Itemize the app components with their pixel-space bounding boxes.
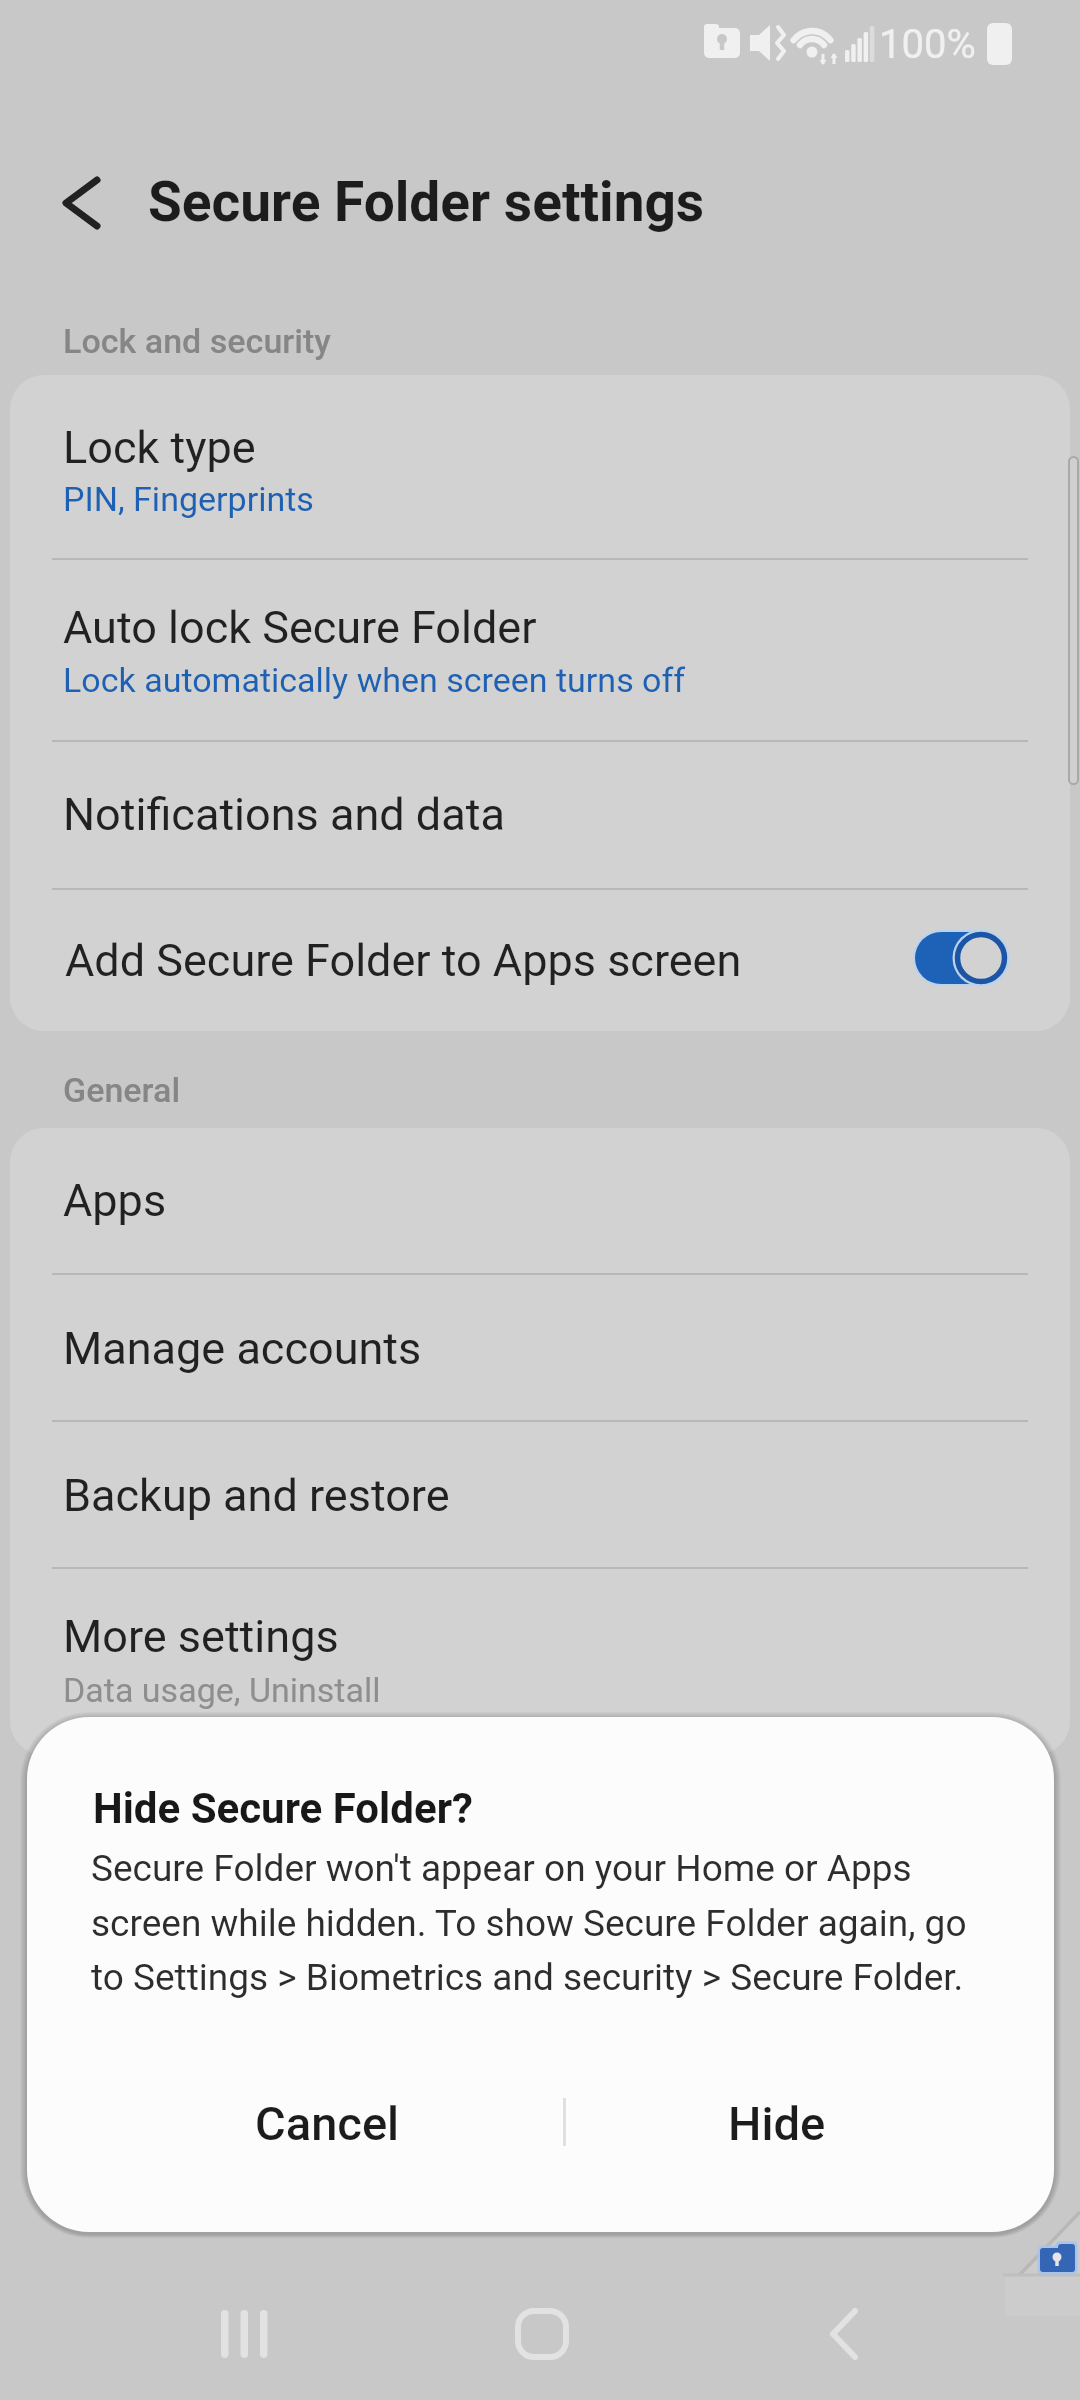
staticText: General — [63, 1070, 181, 1110]
button[interactable]: Hide — [597, 2053, 957, 2193]
button[interactable] — [10, 889, 1070, 1031]
button[interactable] — [10, 1128, 1070, 1273]
button[interactable] — [795, 2295, 895, 2385]
button[interactable] — [10, 741, 1070, 888]
button[interactable] — [10, 375, 1070, 558]
staticText: PIN, Fingerprints — [63, 479, 314, 519]
staticText: Hide Secure Folder? — [93, 1784, 473, 1833]
button[interactable] — [40, 170, 120, 240]
staticText: Hide — [728, 2096, 826, 2151]
staticText: Secure Folder won't appear on your Home … — [91, 1847, 967, 1999]
staticText: Auto lock Secure Folder — [63, 601, 537, 654]
staticText: Cancel — [255, 2096, 400, 2151]
button[interactable] — [913, 926, 1014, 990]
staticText: Add Secure Folder to Apps screen — [65, 934, 742, 987]
button[interactable] — [10, 1274, 1070, 1420]
staticText: Data usage, Uninstall — [63, 1670, 381, 1710]
staticText: Lock and security — [63, 321, 331, 361]
button[interactable] — [10, 1421, 1070, 1567]
button[interactable] — [10, 559, 1070, 741]
button[interactable] — [195, 2295, 295, 2385]
staticText: Manage accounts — [63, 1322, 422, 1375]
button[interactable] — [492, 2295, 592, 2385]
button[interactable]: Cancel — [147, 2053, 507, 2193]
staticText: 100% — [879, 21, 976, 68]
staticText: Apps — [63, 1174, 167, 1227]
staticText: More settings — [63, 1610, 339, 1663]
staticText: Notifications and data — [63, 788, 505, 841]
staticText: Lock automatically when screen turns off — [63, 660, 686, 700]
staticText: Secure Folder settings — [148, 170, 705, 234]
button[interactable] — [10, 1568, 1070, 1755]
staticText: Lock type — [63, 421, 256, 474]
staticText: Backup and restore — [63, 1469, 450, 1522]
